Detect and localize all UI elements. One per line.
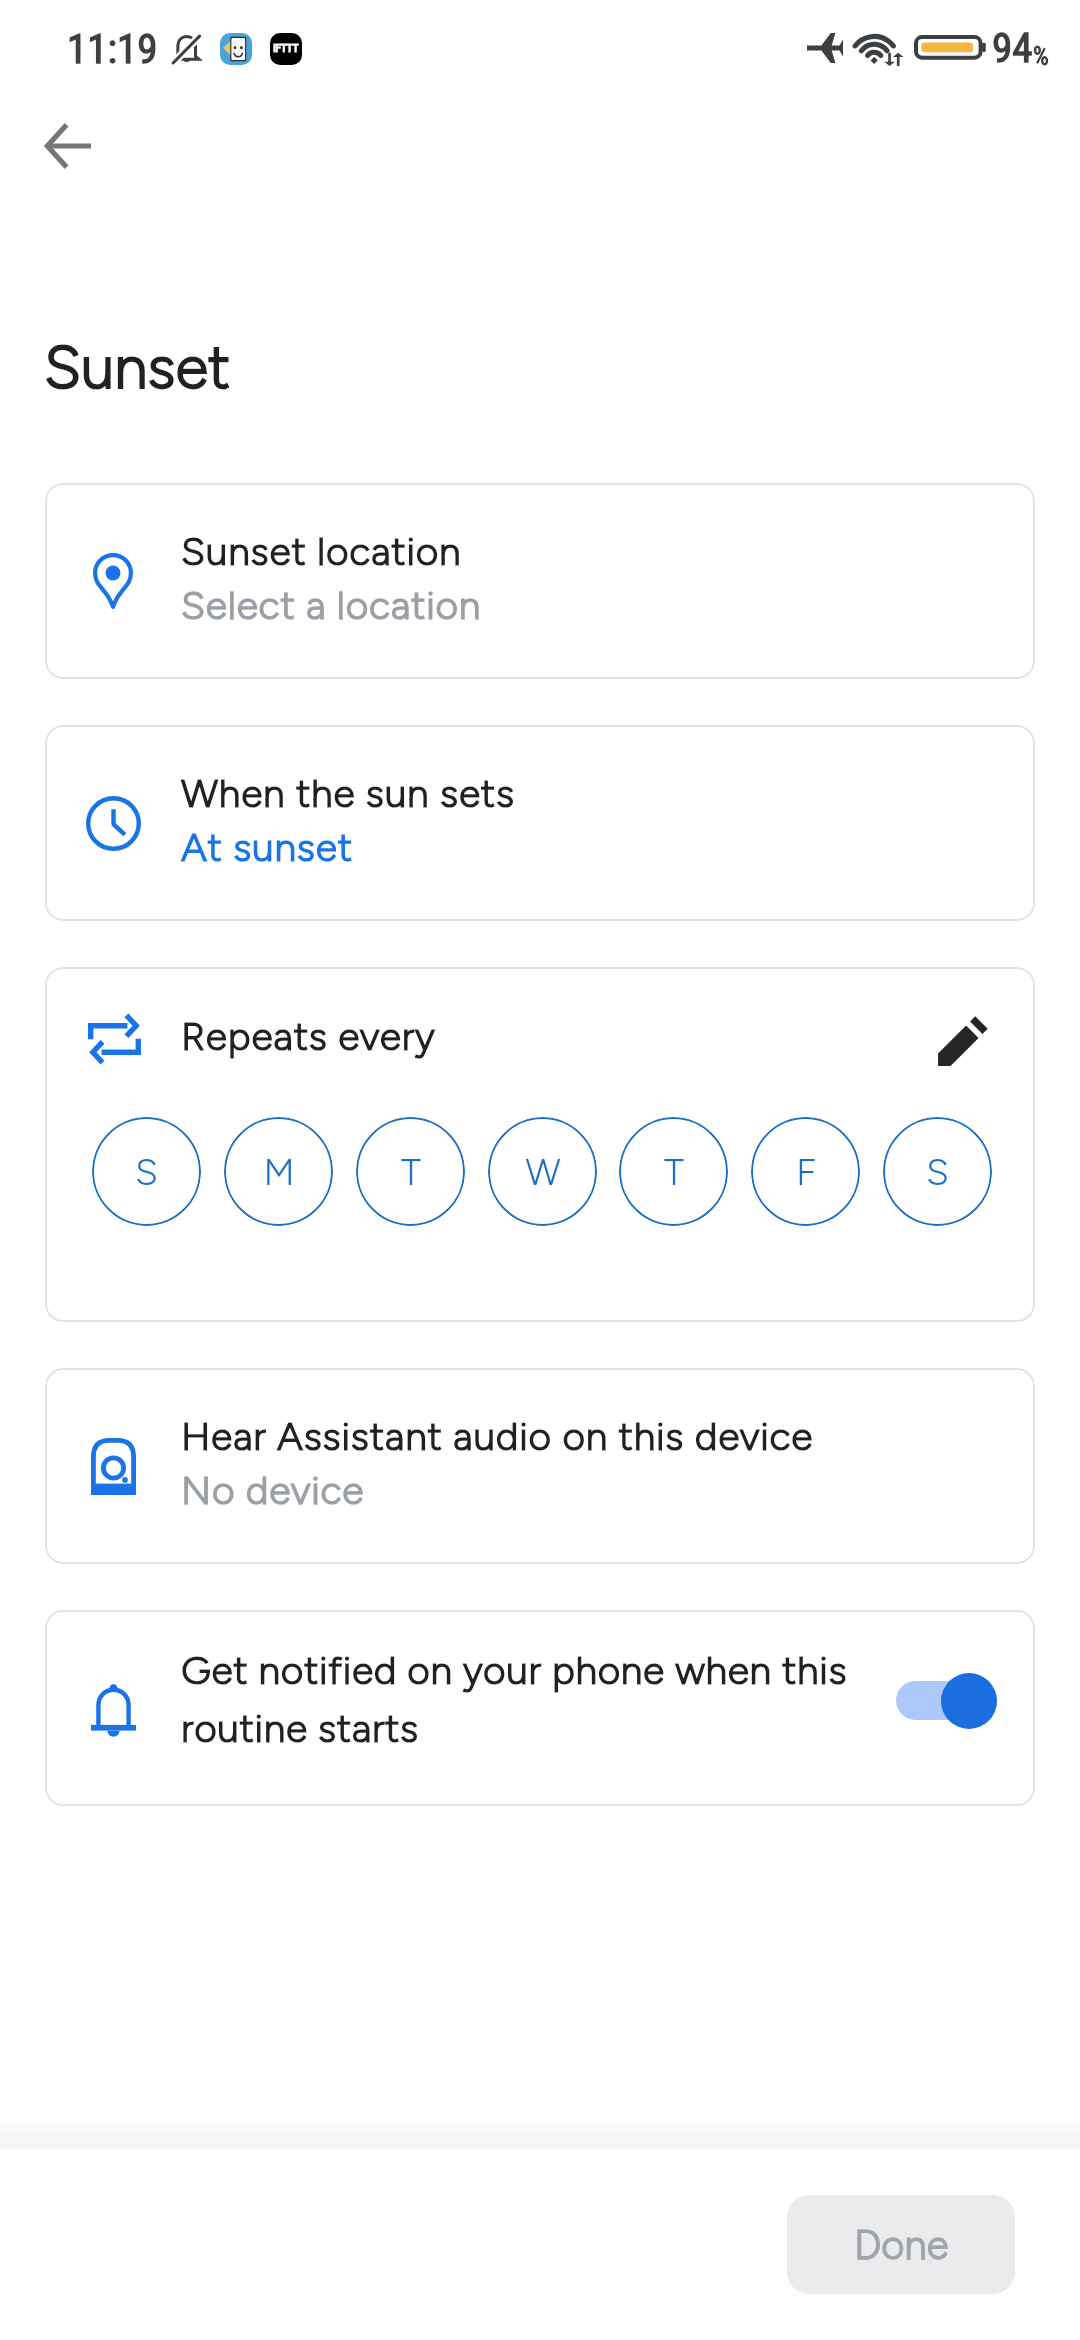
staticText: No device	[181, 1467, 365, 1514]
staticText: F	[796, 1150, 816, 1194]
staticText: W	[525, 1150, 561, 1194]
staticText: %	[1033, 42, 1049, 71]
staticText: IFTTT	[273, 43, 299, 55]
button[interactable]: Done	[787, 2195, 1015, 2294]
staticText: At sunset	[181, 824, 353, 871]
button[interactable]: Repeats every	[45, 967, 1035, 1322]
button[interactable]: Get notified on your phone when this rou…	[45, 1610, 1035, 1806]
staticText: T	[664, 1150, 684, 1194]
button[interactable]: Sunset location	[45, 483, 1035, 679]
button[interactable]: M	[224, 1117, 333, 1226]
button[interactable]: Hear Assistant audio on this device	[45, 1368, 1035, 1564]
staticText: Sunset	[44, 331, 231, 403]
button[interactable]: Edit repeat days	[934, 1012, 992, 1070]
button[interactable]: S	[883, 1117, 992, 1226]
button[interactable]: T	[619, 1117, 728, 1226]
staticText: Done	[854, 2221, 949, 2269]
button[interactable]: When the sun sets	[45, 725, 1035, 921]
button[interactable]: F	[751, 1117, 860, 1226]
staticText: T	[401, 1150, 421, 1194]
staticText: Hear Assistant audio on this device	[181, 1413, 814, 1460]
button[interactable]: S	[92, 1117, 201, 1226]
button[interactable]: T	[356, 1117, 465, 1226]
staticText: Select a location	[181, 582, 482, 629]
button[interactable]: Notification toggle	[890, 1610, 1005, 1806]
staticText: 11:19	[67, 25, 158, 73]
button[interactable]: Back	[22, 100, 114, 192]
staticText: M	[263, 1150, 295, 1194]
staticText: 94	[992, 24, 1033, 72]
staticText: Repeats every	[181, 1013, 436, 1060]
staticText: When the sun sets	[181, 770, 515, 817]
staticText: Get notified on your phone when this rou…	[181, 1647, 881, 1752]
button[interactable]: W	[488, 1117, 597, 1226]
staticText: Sunset location	[181, 528, 462, 575]
staticText: S	[135, 1150, 158, 1194]
staticText: S	[926, 1150, 949, 1194]
